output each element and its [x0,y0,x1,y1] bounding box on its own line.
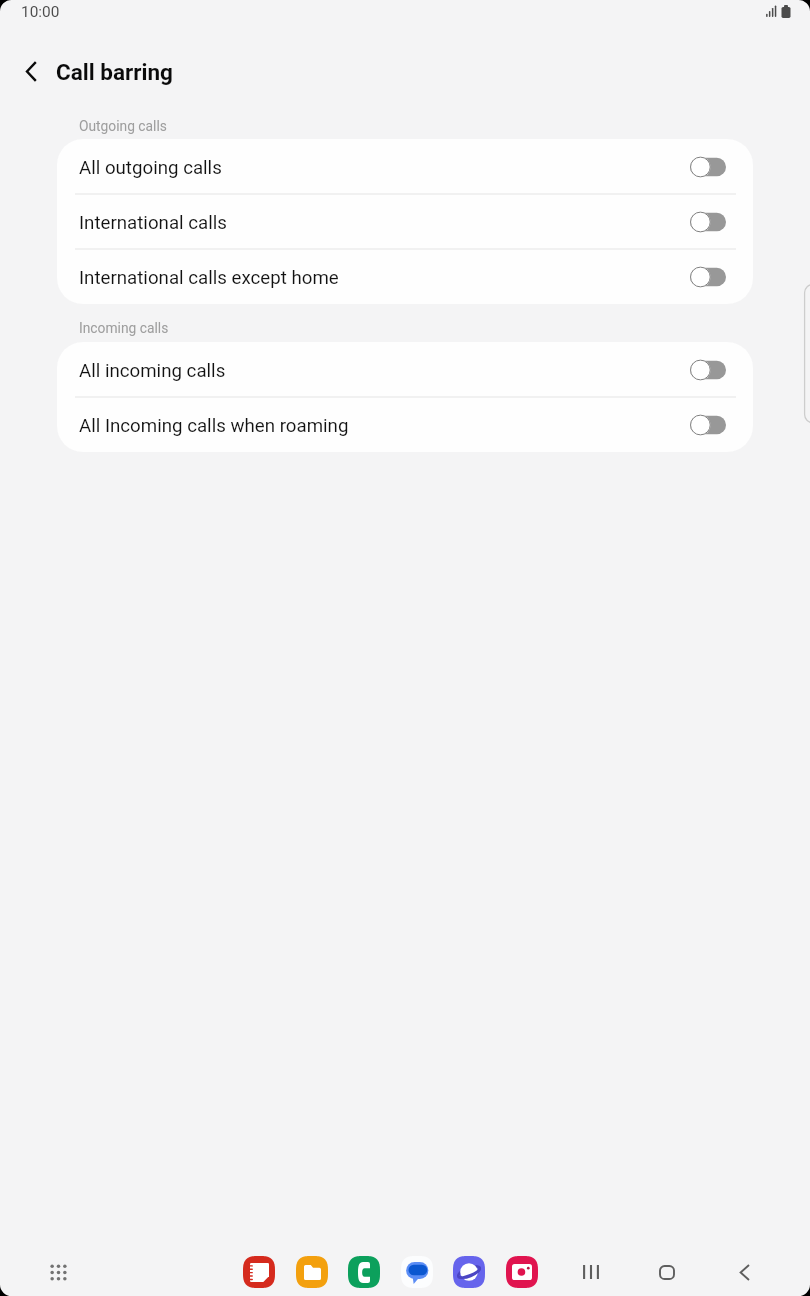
button[interactable]: Messages [400,1255,434,1289]
button[interactable]: Back [725,1253,763,1291]
button[interactable]: Navigate up [16,56,46,86]
button[interactable]: Phone [347,1255,381,1289]
button[interactable]: International calls except home [57,249,753,304]
staticText: All Incoming calls when roaming [79,415,349,437]
button[interactable]: My Files [295,1255,329,1289]
button[interactable]: Home [648,1253,686,1291]
staticText: All incoming calls [79,360,226,382]
staticText: All outgoing calls [79,157,222,179]
button[interactable]: All incoming calls [57,342,753,397]
staticText: Call barring [56,59,173,85]
staticText: Incoming calls [79,320,169,336]
staticText: Outgoing calls [79,118,167,134]
button[interactable]: Internet [452,1255,486,1289]
staticText: International calls except home [79,267,339,289]
staticText: 10:00 [21,3,60,21]
button[interactable]: All outgoing calls [57,139,753,194]
button[interactable]: Samsung Notes [242,1255,276,1289]
button[interactable]: Recent apps [572,1253,610,1291]
button[interactable]: Camera [505,1255,539,1289]
button[interactable]: Apps [41,1255,75,1289]
button[interactable]: All Incoming calls when roaming [57,397,753,452]
staticText: International calls [79,212,227,234]
button[interactable]: International calls [57,194,753,249]
